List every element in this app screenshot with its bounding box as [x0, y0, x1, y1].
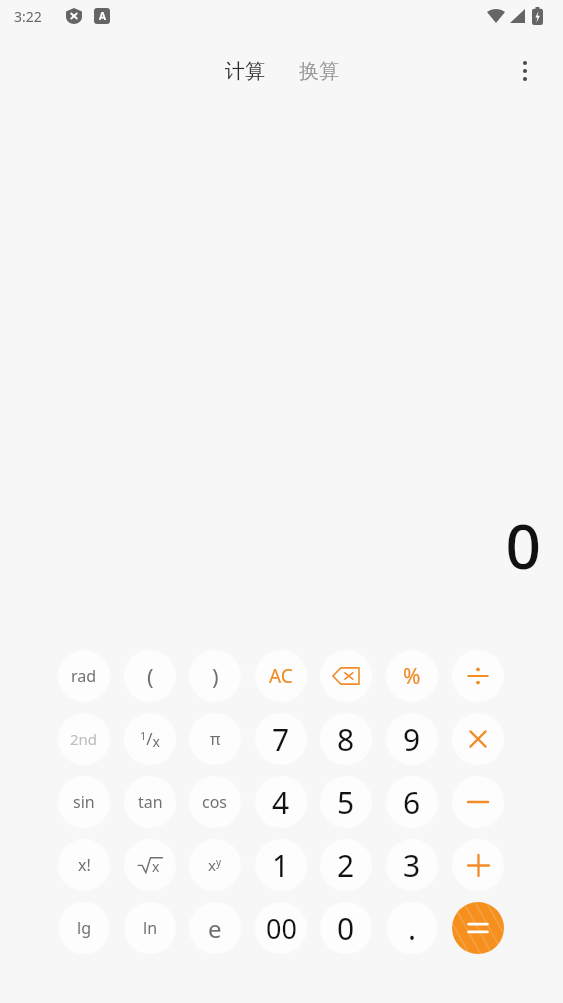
button[interactable]: Plus — [452, 839, 504, 891]
button[interactable]: π — [189, 713, 241, 765]
button[interactable]: 计算 — [217, 55, 273, 88]
button[interactable]: . — [386, 902, 438, 954]
button[interactable]: square root of x — [124, 839, 176, 891]
staticText: A — [99, 9, 106, 23]
button[interactable]: ( — [124, 650, 176, 702]
staticText: x — [152, 857, 160, 875]
button[interactable]: 1 — [255, 839, 307, 891]
staticText: 9 — [403, 719, 421, 760]
staticText: 4 — [272, 782, 290, 823]
staticText: ln — [143, 917, 158, 939]
staticText: e — [208, 912, 222, 945]
staticText: 0 — [505, 503, 541, 587]
staticText: 2 — [337, 845, 355, 886]
button[interactable]: one over x — [124, 713, 176, 765]
button[interactable]: rad — [58, 650, 110, 702]
button[interactable]: 8 — [320, 713, 372, 765]
button[interactable]: lg — [58, 902, 110, 954]
button[interactable]: x! — [58, 839, 110, 891]
button[interactable]: 7 — [255, 713, 307, 765]
button[interactable]: AC — [255, 650, 307, 702]
button[interactable]: ) — [189, 650, 241, 702]
staticText: . — [408, 908, 417, 949]
staticText: cos — [202, 791, 228, 813]
button[interactable]: 2nd — [58, 713, 110, 765]
staticText: rad — [71, 665, 97, 687]
staticText: 计算 — [225, 59, 265, 84]
staticText: 换算 — [299, 59, 339, 84]
staticText: 3:22 — [14, 7, 42, 26]
button[interactable]: Multiply — [452, 713, 504, 765]
button[interactable]: 0 — [320, 902, 372, 954]
staticText: lg — [77, 917, 91, 939]
button[interactable]: e — [189, 902, 241, 954]
staticText: 3 — [403, 845, 421, 886]
button[interactable]: Equals — [452, 902, 504, 954]
button[interactable]: 3 — [386, 839, 438, 891]
staticText: 2nd — [70, 729, 98, 749]
staticText: 5 — [337, 782, 355, 823]
staticText: 1/x — [140, 727, 161, 751]
staticText: 7 — [272, 719, 290, 760]
button[interactable]: 换算 — [291, 55, 347, 88]
button[interactable]: 2 — [320, 839, 372, 891]
staticText: tan — [138, 791, 163, 813]
staticText: sin — [73, 791, 95, 813]
button[interactable]: tan — [124, 776, 176, 828]
button[interactable]: % — [386, 650, 438, 702]
staticText: % — [403, 662, 421, 691]
button[interactable]: ln — [124, 902, 176, 954]
button[interactable]: 6 — [386, 776, 438, 828]
button[interactable]: Delete — [320, 650, 372, 702]
button[interactable]: 00 — [255, 902, 307, 954]
staticText: AC — [269, 663, 293, 689]
staticText: π — [210, 728, 221, 750]
staticText: 00 — [266, 910, 297, 947]
button[interactable]: Divide — [452, 650, 504, 702]
staticText: ( — [147, 661, 154, 691]
button[interactable]: More options — [505, 51, 545, 91]
button[interactable]: 5 — [320, 776, 372, 828]
staticText: 6 — [403, 782, 421, 823]
button[interactable]: 4 — [255, 776, 307, 828]
button[interactable]: 9 — [386, 713, 438, 765]
button[interactable]: Minus — [452, 776, 504, 828]
staticText: 0 — [337, 908, 355, 949]
staticText: 8 — [337, 719, 355, 760]
button[interactable]: cos — [189, 776, 241, 828]
staticText: xy — [208, 855, 222, 875]
staticText: x! — [78, 854, 91, 876]
staticText: 1 — [272, 845, 290, 886]
staticText: ) — [212, 661, 219, 691]
button[interactable]: x to the power of y — [189, 839, 241, 891]
button[interactable]: sin — [58, 776, 110, 828]
